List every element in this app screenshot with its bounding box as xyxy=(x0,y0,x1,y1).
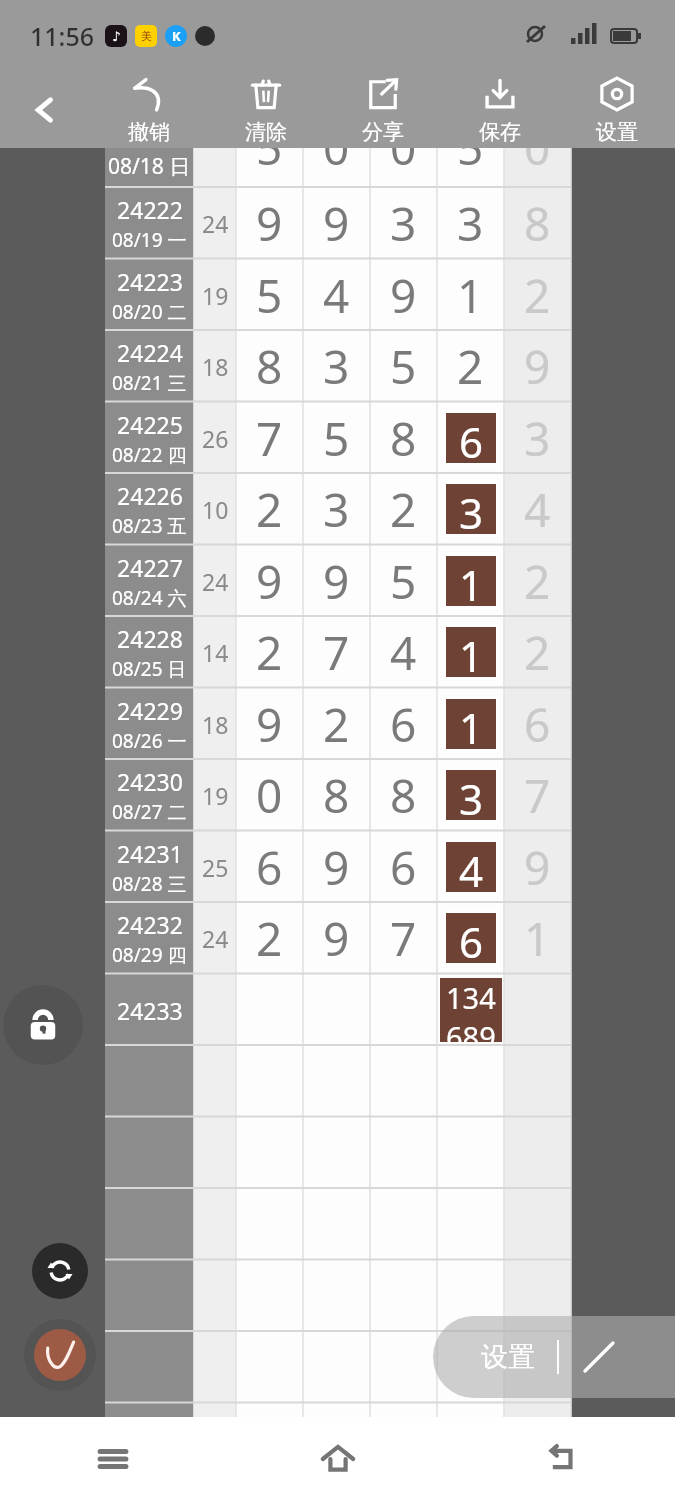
staticText: 2 xyxy=(256,907,283,970)
staticText: 9 xyxy=(256,693,283,756)
staticText: 11:56 xyxy=(30,19,95,53)
staticText: 24228 xyxy=(117,623,183,654)
staticText: 9 xyxy=(390,264,417,327)
staticText: 8 xyxy=(323,764,350,827)
staticText: 设置 xyxy=(481,1340,535,1374)
staticText: 0 xyxy=(390,116,417,179)
staticText: 3 xyxy=(459,770,484,820)
staticText: 8 xyxy=(390,764,417,827)
staticText: 保存 xyxy=(479,119,521,145)
staticText: 14 xyxy=(202,637,229,668)
button[interactable]: 24223 xyxy=(105,259,571,331)
staticText: 1 xyxy=(524,907,551,970)
button[interactable]: Back xyxy=(0,72,90,148)
staticText: 6 xyxy=(390,693,417,756)
staticText: 24 xyxy=(202,923,229,954)
staticText: 3 xyxy=(390,192,417,255)
staticText: 18 xyxy=(202,709,229,740)
button[interactable]: 24233 xyxy=(105,974,571,1046)
button[interactable]: 24222 xyxy=(105,187,571,259)
staticText: 9 xyxy=(323,192,350,255)
staticText: 6 xyxy=(390,836,417,899)
staticText: 24229 xyxy=(117,695,183,726)
button[interactable]: 24224 xyxy=(105,330,571,402)
staticText: 2 xyxy=(457,335,484,398)
staticText: 18 xyxy=(202,351,229,382)
staticText: 7 xyxy=(390,907,417,970)
button[interactable]: 清除 xyxy=(207,72,324,148)
staticText: 134 xyxy=(446,978,496,1017)
staticText: 24230 xyxy=(117,766,183,797)
staticText: 08/24 六 xyxy=(112,585,187,611)
staticText: 08/26 一 xyxy=(112,728,187,754)
staticText: 分享 xyxy=(362,119,404,145)
button[interactable]: Lock xyxy=(3,985,83,1065)
staticText: 5 xyxy=(256,116,283,179)
staticText: 5 xyxy=(390,550,417,613)
button[interactable]: 设置 xyxy=(433,1316,675,1398)
button[interactable]: Home xyxy=(225,1417,450,1500)
button[interactable]: 撤销 xyxy=(90,72,207,148)
staticText: 9 xyxy=(323,550,350,613)
staticText: 24 xyxy=(202,566,229,597)
staticText: 19 xyxy=(202,780,229,811)
staticText: 美 xyxy=(141,29,152,43)
staticText: 8 xyxy=(256,335,283,398)
staticText: 4 xyxy=(524,478,551,541)
staticText: 0 xyxy=(323,116,350,179)
staticText: 2 xyxy=(390,478,417,541)
staticText: 7 xyxy=(256,407,283,470)
staticText: 24232 xyxy=(117,909,183,940)
staticText: 24227 xyxy=(117,552,183,583)
staticText: 5 xyxy=(390,335,417,398)
staticText: 2 xyxy=(256,621,283,684)
button[interactable]: Signature xyxy=(24,1319,96,1391)
button[interactable]: 24229 xyxy=(105,688,571,760)
staticText: 9 xyxy=(323,836,350,899)
button[interactable]: 24228 xyxy=(105,616,571,688)
button[interactable]: 24227 xyxy=(105,545,571,617)
staticText: 6 xyxy=(524,693,551,756)
staticText: 6 xyxy=(459,413,484,463)
staticText: 3 xyxy=(323,478,350,541)
staticText: 3 xyxy=(457,192,484,255)
staticText: 清除 xyxy=(245,119,287,145)
staticText: 2 xyxy=(524,550,551,613)
staticText: 9 xyxy=(524,335,551,398)
button[interactable]: 24232 xyxy=(105,902,571,974)
staticText: 1 xyxy=(457,264,484,327)
button[interactable]: 分享 xyxy=(324,72,441,148)
button[interactable]: Refresh xyxy=(32,1243,88,1299)
staticText: 08/25 日 xyxy=(112,656,187,682)
staticText: 24231 xyxy=(117,838,183,869)
button[interactable]: 24230 xyxy=(105,759,571,831)
staticText: 8 xyxy=(390,407,417,470)
button[interactable]: Back xyxy=(450,1417,675,1500)
staticText: 8 xyxy=(524,192,551,255)
button[interactable]: Recents xyxy=(0,1417,225,1500)
button[interactable]: 24231 xyxy=(105,831,571,903)
staticText: 设置 xyxy=(596,119,638,145)
button[interactable]: 24225 xyxy=(105,402,571,474)
staticText: 5 xyxy=(256,264,283,327)
staticText: 24222 xyxy=(117,194,183,225)
staticText: 08/21 三 xyxy=(112,370,187,396)
staticText: 08/18 日 xyxy=(108,152,191,181)
staticText: 1 xyxy=(459,699,484,749)
staticText: 2 xyxy=(256,478,283,541)
staticText: 2 xyxy=(323,693,350,756)
staticText: 08/29 四 xyxy=(112,942,187,968)
staticText: 3 xyxy=(323,335,350,398)
staticText: 撤销 xyxy=(128,119,170,145)
button[interactable]: 保存 xyxy=(441,72,558,148)
button[interactable]: 24226 xyxy=(105,473,571,545)
staticText: 24 xyxy=(202,208,229,239)
staticText: 1 xyxy=(459,556,484,606)
staticText: ♪ xyxy=(112,29,121,44)
staticText: 6 xyxy=(256,836,283,899)
button[interactable]: 设置 xyxy=(558,72,675,148)
staticText: 08/19 一 xyxy=(112,227,187,253)
staticText: 1 xyxy=(459,627,484,677)
staticText: 9 xyxy=(256,550,283,613)
